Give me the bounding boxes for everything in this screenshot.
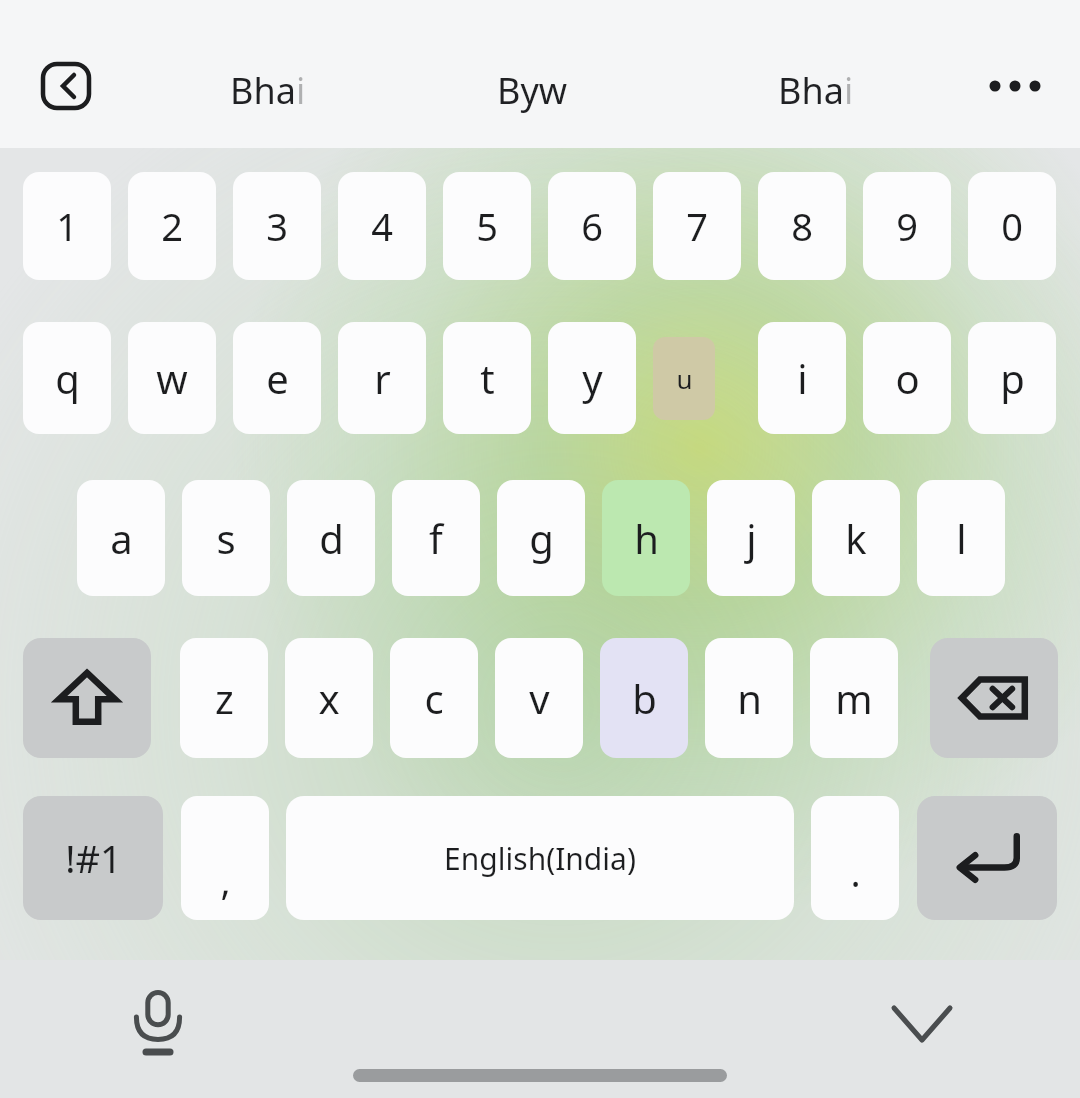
staticText: 2 (161, 200, 183, 252)
button[interactable]: l (917, 480, 1005, 596)
staticText: 9 (896, 200, 918, 252)
button[interactable]: Bha (778, 55, 978, 125)
staticText: . (850, 846, 861, 898)
button[interactable]: n (705, 638, 793, 758)
staticText: 1 (56, 200, 78, 252)
staticText: b (632, 671, 657, 725)
staticText: x (318, 671, 340, 725)
staticText: n (737, 671, 762, 725)
button[interactable]: u (653, 337, 715, 420)
button[interactable]: k (812, 480, 900, 596)
button[interactable]: s (182, 480, 270, 596)
staticText: k (845, 511, 867, 565)
button[interactable]: c (390, 638, 478, 758)
staticText: 3 (266, 200, 288, 252)
button[interactable]: e (233, 322, 321, 434)
button[interactable]: 8 (758, 172, 846, 280)
button[interactable]: 6 (548, 172, 636, 280)
staticText: 6 (581, 200, 603, 252)
staticText: i (797, 351, 808, 405)
staticText: s (216, 511, 236, 565)
button[interactable]: !#1 (23, 796, 163, 920)
button[interactable]: m (810, 638, 898, 758)
button[interactable]: Backspace (930, 638, 1058, 758)
staticText: w (156, 351, 188, 405)
staticText: 4 (371, 200, 393, 252)
staticText: , (220, 854, 231, 906)
staticText: Bha (230, 66, 296, 115)
staticText: 8 (791, 200, 813, 252)
button[interactable]: Bha (230, 55, 430, 125)
staticText: !#1 (65, 832, 122, 884)
button[interactable]: h (602, 480, 690, 596)
button[interactable]: 7 (653, 172, 741, 280)
button[interactable]: p (968, 322, 1056, 434)
button[interactable]: v (495, 638, 583, 758)
staticText: d (319, 511, 344, 565)
staticText: a (110, 511, 133, 565)
button[interactable]: z (180, 638, 268, 758)
staticText: i (296, 66, 306, 115)
staticText: h (634, 511, 659, 565)
button[interactable]: 5 (443, 172, 531, 280)
staticText: English(India) (444, 838, 636, 879)
staticText: 0 (1001, 200, 1023, 252)
button[interactable]: . (811, 796, 899, 920)
staticText: y (582, 351, 603, 405)
button[interactable]: a (77, 480, 165, 596)
button[interactable]: Byw (497, 55, 697, 125)
button[interactable]: Hide keyboard (872, 976, 972, 1072)
staticText: 5 (476, 200, 498, 252)
button[interactable]: Back (41, 62, 91, 110)
button[interactable]: q (23, 322, 111, 434)
staticText: c (424, 671, 444, 725)
button[interactable]: Voice input (108, 976, 208, 1072)
staticText: Bha (778, 66, 844, 115)
staticText: m (835, 671, 873, 725)
staticText: q (55, 351, 80, 405)
staticText: r (374, 351, 391, 405)
staticText: Byw (497, 66, 568, 115)
button[interactable]: g (497, 480, 585, 596)
button[interactable]: Shift (23, 638, 151, 758)
button[interactable]: More options (975, 58, 1055, 114)
button[interactable]: f (392, 480, 480, 596)
button[interactable]: r (338, 322, 426, 434)
staticText: u (676, 361, 693, 396)
staticText: 7 (686, 200, 708, 252)
staticText: p (1000, 351, 1025, 405)
staticText: t (480, 351, 495, 405)
button[interactable]: , (181, 796, 269, 920)
button[interactable]: 9 (863, 172, 951, 280)
button[interactable]: j (707, 480, 795, 596)
button[interactable]: 2 (128, 172, 216, 280)
staticText: l (956, 511, 967, 565)
button[interactable]: w (128, 322, 216, 434)
button[interactable]: b (600, 638, 688, 758)
button[interactable]: 0 (968, 172, 1056, 280)
button[interactable]: English(India) (286, 796, 794, 920)
staticText: i (844, 66, 854, 115)
button[interactable]: o (863, 322, 951, 434)
staticText: f (429, 511, 443, 565)
button[interactable]: 4 (338, 172, 426, 280)
staticText: v (529, 671, 550, 725)
button[interactable]: d (287, 480, 375, 596)
button[interactable]: y (548, 322, 636, 434)
button[interactable]: x (285, 638, 373, 758)
staticText: g (529, 511, 554, 565)
button[interactable]: Enter (917, 796, 1057, 920)
staticText: z (215, 671, 234, 725)
button[interactable]: i (758, 322, 846, 434)
button[interactable]: t (443, 322, 531, 434)
staticText: j (746, 511, 757, 565)
staticText: o (895, 351, 920, 405)
staticText: e (266, 351, 289, 405)
button[interactable]: 3 (233, 172, 321, 280)
button[interactable]: 1 (23, 172, 111, 280)
